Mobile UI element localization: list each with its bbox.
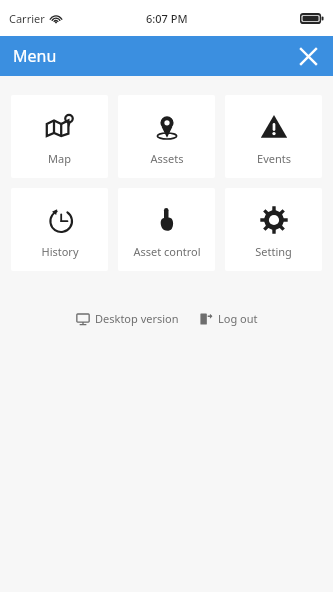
staticText: Desktop version: [95, 311, 179, 326]
staticText: Menu: [13, 45, 57, 67]
button[interactable]: Assets: [118, 95, 215, 178]
staticText: Events: [257, 151, 291, 166]
button[interactable]: Map: [11, 95, 108, 178]
staticText: Log out: [218, 311, 258, 326]
button[interactable]: Asset control: [118, 188, 215, 271]
staticText: Setting: [255, 244, 292, 259]
staticText: Assets: [150, 151, 184, 166]
button[interactable]: Close: [291, 39, 325, 73]
button[interactable]: Desktop version: [72, 307, 183, 330]
staticText: History: [41, 244, 79, 259]
staticText: Carrier: [9, 11, 45, 26]
button[interactable]: Log out: [195, 307, 262, 330]
button[interactable]: Events: [225, 95, 322, 178]
staticText: Asset control: [133, 244, 201, 259]
staticText: Map: [48, 151, 71, 166]
button[interactable]: History: [11, 188, 108, 271]
staticText: 6:07 PM: [146, 11, 188, 26]
button[interactable]: Setting: [225, 188, 322, 271]
